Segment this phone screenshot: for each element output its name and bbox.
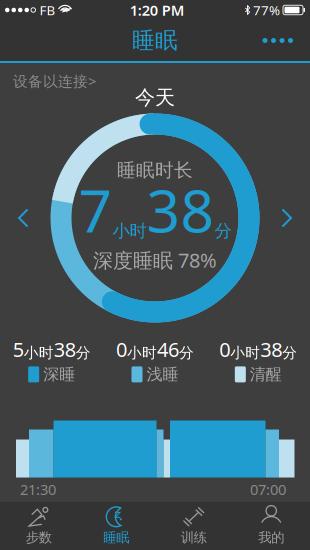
staticText: 5小时38分 <box>13 336 91 363</box>
button[interactable]: 设备以连接> <box>0 62 104 97</box>
button[interactable]: More options <box>254 26 301 55</box>
button[interactable]: 我的 <box>232 502 310 550</box>
button[interactable]: Previous day <box>9 200 37 236</box>
staticText: 0小时38分 <box>219 336 297 363</box>
staticText: 浅睡 <box>146 365 178 384</box>
button[interactable]: 训练 <box>155 502 232 550</box>
staticText: 设备以连接> <box>13 71 96 91</box>
staticText: 睡眠 <box>103 529 129 546</box>
staticText: 分 <box>214 220 231 242</box>
staticText: 77% <box>253 1 280 19</box>
staticText: 小时 <box>112 220 146 242</box>
button[interactable]: 步数 <box>0 502 77 550</box>
staticText: 睡眠 <box>132 27 178 54</box>
staticText: 深睡 <box>43 365 75 384</box>
staticText: 21:30 <box>20 479 56 499</box>
button[interactable]: 睡眠 <box>77 502 155 550</box>
staticText: 深度睡眠 78% <box>93 247 217 273</box>
staticText: 38 <box>146 171 214 249</box>
staticText: 步数 <box>26 529 52 546</box>
staticText: 0小时46分 <box>116 336 194 363</box>
staticText: 07:00 <box>250 479 286 499</box>
staticText: 我的 <box>258 529 284 546</box>
staticText: 训练 <box>181 529 207 546</box>
button[interactable]: Next day <box>273 200 301 236</box>
staticText: 7 <box>78 171 112 249</box>
staticText: 今天 <box>135 85 175 110</box>
staticText: 1:20 PM <box>130 0 185 20</box>
staticText: 清醒 <box>250 365 282 384</box>
staticText: 睡眠时长 <box>117 159 193 182</box>
staticText: FB <box>39 1 55 19</box>
